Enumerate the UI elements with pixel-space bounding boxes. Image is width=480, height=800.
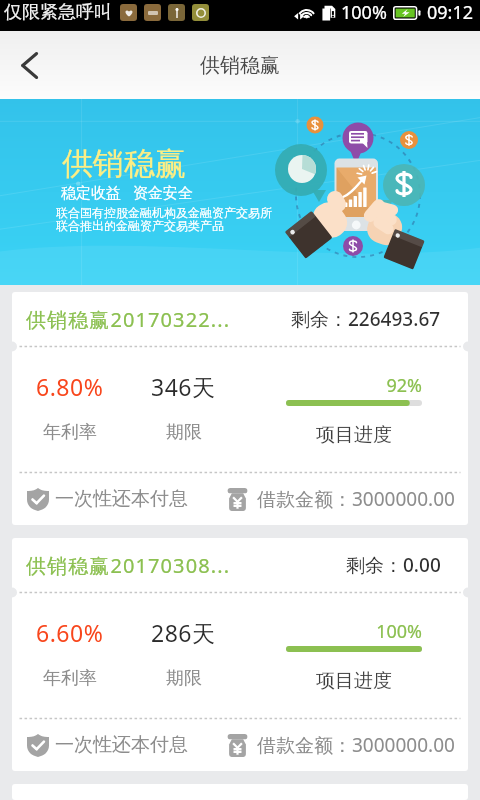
staticText: 借款金额：3000000.00	[257, 486, 455, 512]
staticText: 项目进度	[316, 423, 392, 447]
staticText: 346天	[151, 371, 216, 402]
staticText: 6.80%	[36, 371, 104, 402]
staticText: 期限	[166, 667, 202, 690]
staticText: 剩余：0.00	[346, 552, 441, 578]
staticText: 100%	[341, 0, 387, 25]
button[interactable]: 供销稳赢20170308...	[12, 538, 468, 771]
staticText: 286天	[151, 617, 216, 648]
staticText: 项目进度	[316, 669, 392, 693]
staticText: 6.60%	[36, 617, 104, 648]
staticText: 92%	[286, 373, 422, 398]
staticText: 联合国有控股金融机构及金融资产交易所	[56, 205, 272, 220]
staticText: 联合推出的金融资产交易类产品	[56, 218, 224, 233]
staticText: 供销稳赢20170308...	[26, 552, 231, 579]
staticText: 年利率	[43, 667, 97, 690]
staticText: 期限	[166, 421, 202, 444]
staticText: 剩余：226493.67	[291, 306, 441, 332]
staticText: 一次性还本付息	[55, 487, 188, 511]
staticText: 仅限紧急呼叫	[4, 1, 112, 24]
button[interactable]: 供销稳赢20170322...	[12, 292, 468, 525]
staticText: 借款金额：3000000.00	[257, 732, 455, 758]
button[interactable]: Back	[0, 31, 58, 99]
staticText: 供销稳赢	[62, 144, 186, 183]
staticText: 09:12	[427, 0, 474, 25]
staticText: 一次性还本付息	[55, 733, 188, 757]
staticText: 稳定收益 资金安全	[61, 182, 193, 202]
staticText: 供销稳赢	[200, 53, 280, 78]
staticText: 年利率	[43, 421, 97, 444]
staticText: 供销稳赢20170322...	[26, 306, 231, 333]
staticText: 100%	[286, 619, 422, 644]
